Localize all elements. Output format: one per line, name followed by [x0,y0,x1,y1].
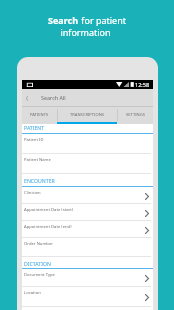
staticText: ENCOUNTER [24,177,55,184]
staticText: Patient Name [24,157,51,163]
staticText: Document Type [24,272,55,278]
button[interactable]: TRANSCRIPTIONS [57,107,117,124]
button[interactable]: Appointment Date (end) [22,221,153,238]
staticText: SETTINGS [126,112,145,118]
button[interactable]: Document Type [22,269,153,287]
staticText: TRANSCRIPTIONS [70,112,105,118]
button[interactable]: Patient ID [22,134,153,154]
button[interactable]: PATIENTS [22,107,57,124]
staticText: PATIENTS [30,112,49,118]
button[interactable]: SETTINGS [117,107,153,124]
staticText: PATIENT [24,124,45,131]
button[interactable]: Clinician [22,187,153,204]
staticText: Appointment Date (start) [24,207,73,213]
staticText: Search All [41,94,66,101]
button[interactable]: Order Number [22,238,153,257]
staticText: Location [24,290,41,296]
staticText: for patient [79,14,126,26]
staticText: Patient ID [24,137,44,143]
staticText: DICTATION [24,260,51,267]
staticText: information [60,26,111,38]
staticText: Search [48,14,79,26]
staticText: 12:58 [135,81,150,88]
button[interactable]: Appointment Date (start) [22,204,153,221]
button[interactable]: Patient Name [22,154,153,174]
button[interactable]: Location [22,287,153,307]
staticText: Clinician [24,190,41,196]
button[interactable]: Back [20,91,34,105]
staticText: Order Number [24,241,54,247]
staticText: Appointment Date (end) [24,224,72,230]
